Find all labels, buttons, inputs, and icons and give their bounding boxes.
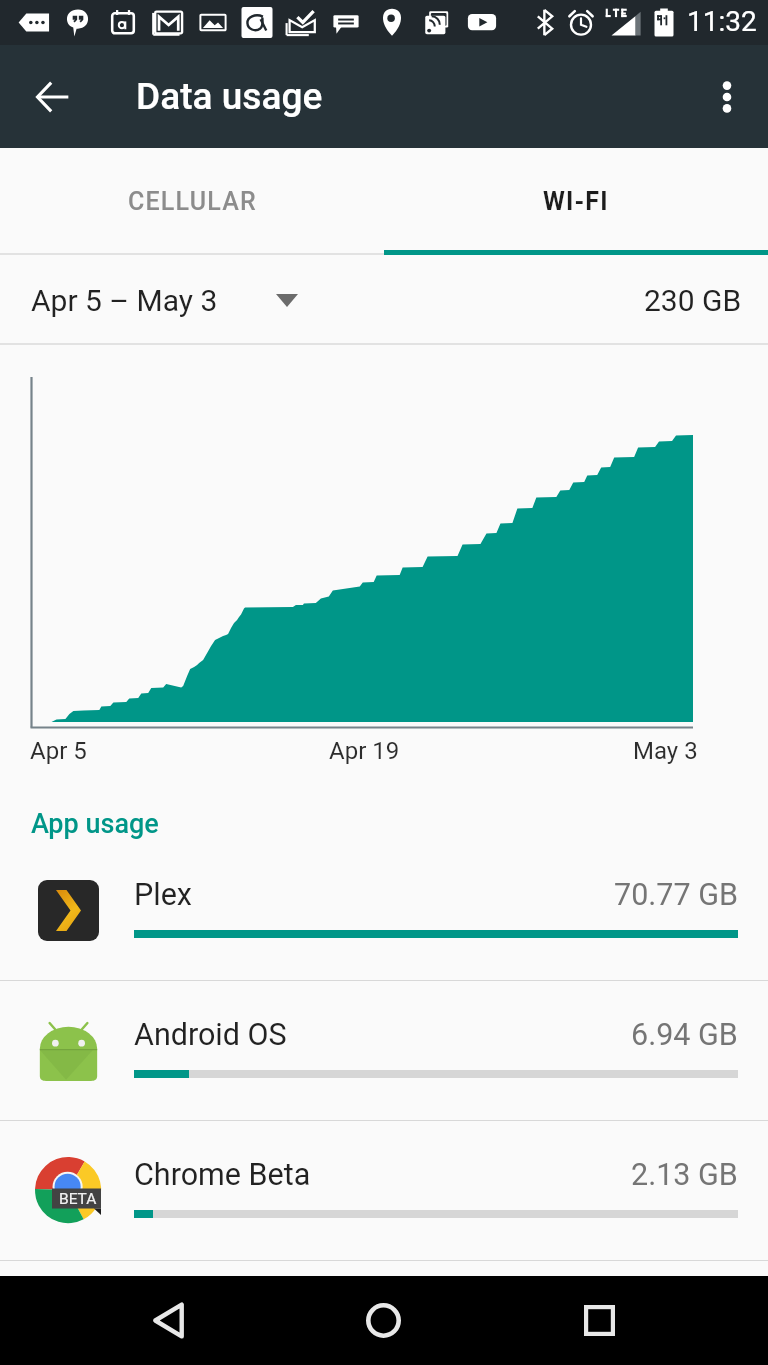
staticText: May 3: [633, 737, 698, 765]
staticText: App usage: [31, 808, 159, 840]
button[interactable]: Home: [341, 1278, 426, 1363]
staticText: 2.13 GB: [631, 1157, 738, 1193]
button[interactable]: WI-FI: [384, 148, 768, 255]
button[interactable]: Android OS: [0, 981, 768, 1120]
staticText: Apr 5: [30, 737, 87, 765]
staticText: Apr 19: [329, 737, 400, 765]
button[interactable]: Plex: [0, 841, 768, 980]
staticText: BETA: [59, 1190, 97, 1208]
staticText: Plex: [134, 877, 192, 913]
staticText: Chrome Beta: [134, 1157, 311, 1193]
staticText: 230 GB: [644, 283, 742, 318]
staticText: Data usage: [136, 75, 323, 118]
button[interactable]: CELLULAR: [0, 148, 384, 255]
button[interactable]: Back: [16, 61, 88, 133]
staticText: 70.77 GB: [614, 877, 738, 913]
staticText: WI-FI: [543, 187, 609, 216]
button[interactable]: More options: [691, 61, 763, 133]
button[interactable]: Back: [126, 1278, 211, 1363]
button[interactable]: Recents: [557, 1278, 642, 1363]
staticText: Android OS: [134, 1017, 287, 1053]
staticText: Apr 5 – May 3: [31, 283, 218, 318]
staticText: CELLULAR: [128, 187, 257, 216]
button[interactable]: Apr 5 – May 3: [0, 255, 768, 345]
staticText: 6.94 GB: [631, 1017, 738, 1053]
button[interactable]: BETA: [0, 1121, 768, 1260]
staticText: 11:32: [687, 5, 757, 38]
